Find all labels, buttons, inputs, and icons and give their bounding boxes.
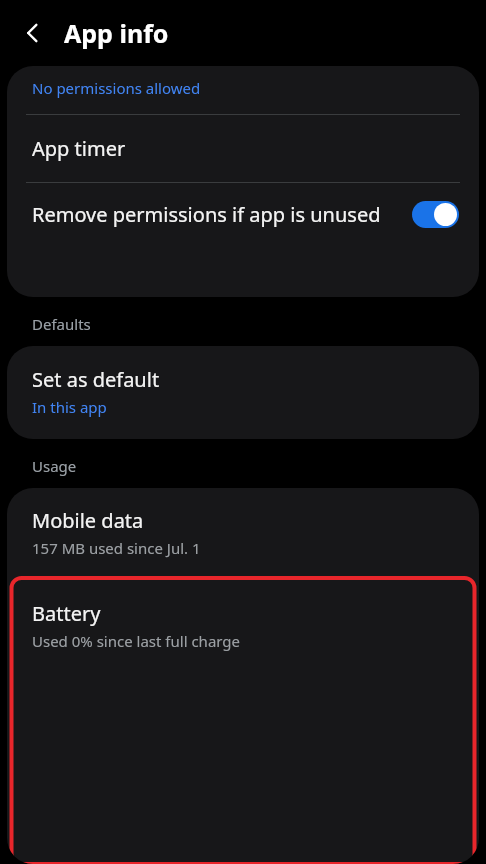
staticText: In this app — [32, 397, 107, 417]
button[interactable]: Back — [11, 11, 55, 55]
staticText: Set as default — [32, 366, 160, 393]
staticText: Remove permissions if app is unused — [32, 201, 381, 228]
staticText: App timer — [32, 135, 126, 162]
button[interactable]: No permissions allowed — [7, 66, 479, 114]
staticText: Battery — [32, 600, 101, 627]
staticText: Defaults — [32, 314, 91, 334]
staticText: 157 MB used since Jul. 1 — [32, 538, 201, 558]
button[interactable]: Set as default — [7, 346, 479, 439]
staticText: Used 0% since last full charge — [32, 631, 241, 651]
button[interactable]: Remove permissions if app is unused — [7, 183, 479, 246]
button[interactable]: Battery — [7, 578, 479, 673]
button[interactable]: Mobile data — [7, 488, 479, 578]
staticText: App info — [64, 16, 169, 50]
button[interactable]: App timer — [7, 115, 479, 182]
staticText: Usage — [32, 456, 77, 476]
staticText: Mobile data — [32, 507, 144, 534]
staticText: No permissions allowed — [32, 78, 201, 98]
button[interactable]: Remove permissions toggle — [412, 201, 459, 228]
